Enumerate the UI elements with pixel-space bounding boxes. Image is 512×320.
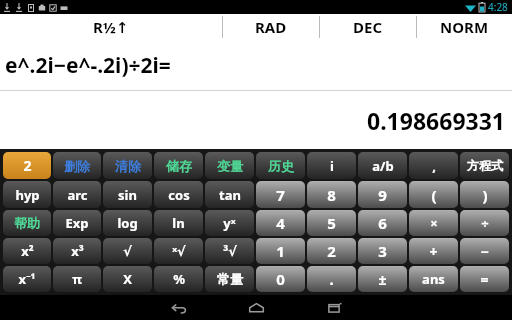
button[interactable]: 0: [256, 266, 305, 292]
staticText: Exp: [65, 214, 89, 232]
staticText: 历史: [268, 158, 294, 174]
staticText: sin: [118, 186, 137, 204]
button[interactable]: 7: [256, 181, 305, 208]
button[interactable]: +: [409, 238, 458, 264]
staticText: 8: [327, 185, 336, 205]
staticText: ±: [378, 270, 387, 289]
staticText: 6: [378, 213, 387, 233]
staticText: e^.2i−e^-.2i)÷2i=: [5, 51, 171, 80]
button[interactable]: (: [409, 181, 458, 208]
button[interactable]: π: [53, 266, 101, 292]
button[interactable]: √: [103, 238, 152, 264]
button[interactable]: 常量: [205, 266, 254, 292]
button[interactable]: 帮助: [3, 210, 51, 236]
staticText: =: [480, 270, 489, 289]
button[interactable]: 4: [256, 210, 305, 236]
button[interactable]: sin: [103, 181, 152, 208]
button[interactable]: 清除: [103, 152, 152, 179]
staticText: 7: [276, 185, 285, 205]
button[interactable]: Recent apps: [308, 295, 360, 320]
staticText: RAD: [255, 17, 287, 37]
staticText: ans: [422, 270, 445, 288]
button[interactable]: −: [460, 238, 509, 264]
staticText: cos: [168, 186, 190, 204]
button[interactable]: ans: [409, 266, 458, 292]
button[interactable]: hyp: [3, 181, 51, 208]
staticText: yˣ: [223, 214, 236, 232]
staticText: 4:28: [488, 0, 508, 14]
button[interactable]: ,: [409, 152, 458, 179]
button[interactable]: x⁻¹: [3, 266, 51, 292]
button[interactable]: 变量: [205, 152, 254, 179]
button[interactable]: 2: [3, 152, 51, 179]
staticText: i: [330, 157, 334, 175]
button[interactable]: x²: [3, 238, 51, 264]
button[interactable]: ˣ√: [154, 238, 203, 264]
button[interactable]: 8: [307, 181, 356, 208]
staticText: 储存: [166, 158, 192, 174]
staticText: +: [429, 242, 438, 261]
button[interactable]: DEC: [320, 14, 416, 40]
staticText: ˣ√: [172, 242, 186, 260]
button[interactable]: 3: [358, 238, 407, 264]
button[interactable]: 6: [358, 210, 407, 236]
button[interactable]: ×: [409, 210, 458, 236]
button[interactable]: ±: [358, 266, 407, 292]
staticText: 4: [276, 213, 285, 233]
staticText: .: [329, 269, 334, 289]
button[interactable]: 9: [358, 181, 407, 208]
staticText: 9: [378, 185, 387, 205]
button[interactable]: X: [103, 266, 152, 292]
staticText: 0.198669331: [367, 105, 506, 136]
staticText: 0: [276, 269, 285, 289]
staticText: 2: [23, 156, 32, 175]
staticText: R½↑: [93, 17, 129, 37]
staticText: x³: [71, 242, 84, 260]
button[interactable]: Back: [152, 295, 204, 320]
button[interactable]: =: [460, 266, 509, 292]
button[interactable]: Home: [230, 295, 282, 320]
staticText: log: [117, 214, 138, 232]
button[interactable]: Exp: [53, 210, 101, 236]
staticText: 常量: [217, 271, 243, 287]
button[interactable]: i: [307, 152, 356, 179]
button[interactable]: 5: [307, 210, 356, 236]
button[interactable]: ÷: [460, 210, 509, 236]
staticText: 1: [276, 241, 285, 261]
button[interactable]: cos: [154, 181, 203, 208]
staticText: √: [123, 244, 132, 259]
staticText: 2: [327, 241, 336, 261]
button[interactable]: %: [154, 266, 203, 292]
button[interactable]: 储存: [154, 152, 203, 179]
button[interactable]: x³: [53, 238, 101, 264]
button[interactable]: ln: [154, 210, 203, 236]
staticText: X: [123, 270, 132, 288]
staticText: arc: [67, 186, 88, 204]
button[interactable]: 删除: [53, 152, 101, 179]
staticText: π: [72, 270, 82, 288]
button[interactable]: 历史: [256, 152, 305, 179]
staticText: NORM: [440, 17, 489, 37]
button[interactable]: ): [460, 181, 509, 208]
button[interactable]: a/b: [358, 152, 407, 179]
staticText: ³√: [223, 242, 237, 260]
button[interactable]: R½↑: [0, 14, 222, 40]
staticText: 清除: [115, 158, 141, 174]
button[interactable]: tan: [205, 181, 254, 208]
button[interactable]: RAD: [223, 14, 319, 40]
staticText: 5: [327, 213, 336, 233]
button[interactable]: yˣ: [205, 210, 254, 236]
staticText: hyp: [15, 186, 40, 204]
button[interactable]: ³√: [205, 238, 254, 264]
button[interactable]: 1: [256, 238, 305, 264]
button[interactable]: 2: [307, 238, 356, 264]
staticText: ÷: [481, 214, 489, 232]
button[interactable]: NORM: [417, 14, 512, 40]
button[interactable]: arc: [53, 181, 101, 208]
staticText: a/b: [372, 157, 394, 175]
button[interactable]: 方程式: [460, 152, 509, 179]
button[interactable]: log: [103, 210, 152, 236]
staticText: (: [431, 185, 437, 205]
button[interactable]: .: [307, 266, 356, 292]
staticText: ×: [430, 214, 438, 232]
